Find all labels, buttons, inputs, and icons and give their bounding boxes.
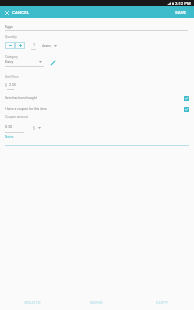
staticText: dozen xyxy=(42,44,51,48)
button[interactable]: $ xyxy=(32,124,42,132)
button[interactable]: Edit category xyxy=(48,58,57,67)
button[interactable]: Dairy xyxy=(5,60,44,64)
button[interactable]: CANCEL xyxy=(0,8,35,17)
staticText: MOVE xyxy=(90,300,103,305)
staticText: 1 xyxy=(33,43,36,47)
staticText: I have a coupon for this item xyxy=(5,107,47,111)
staticText: SAVE xyxy=(175,10,187,15)
staticText: 2.55 xyxy=(9,83,17,87)
staticText: DELETE xyxy=(24,300,41,305)
button[interactable]: COPY xyxy=(129,294,194,310)
button[interactable]: Increase quantity xyxy=(15,42,25,49)
button[interactable]: SAVE xyxy=(168,7,194,18)
staticText: COPY xyxy=(156,300,168,305)
staticText: 0.30 xyxy=(5,125,13,129)
staticText: $ xyxy=(5,83,7,87)
staticText: Item has been bought xyxy=(5,96,37,100)
staticText: Category xyxy=(5,55,18,59)
staticText: Dairy xyxy=(5,60,14,64)
staticText: Coupon amount xyxy=(5,115,28,119)
staticText: Notes xyxy=(5,135,14,139)
button[interactable]: Item has been bought xyxy=(0,93,194,103)
staticText: Eggs xyxy=(5,25,13,29)
button[interactable]: I have a coupon for this item xyxy=(0,104,194,114)
button[interactable]: Decrease quantity xyxy=(5,42,15,49)
staticText: Unit Price xyxy=(5,75,19,79)
staticText: $ xyxy=(33,126,35,130)
button[interactable]: DELETE xyxy=(0,294,64,310)
staticText: CANCEL xyxy=(12,10,30,15)
staticText: 2:12 PM xyxy=(175,1,191,6)
staticText: Quantity xyxy=(5,35,17,39)
button[interactable]: dozen xyxy=(41,42,58,50)
button[interactable]: MOVE xyxy=(64,294,129,310)
